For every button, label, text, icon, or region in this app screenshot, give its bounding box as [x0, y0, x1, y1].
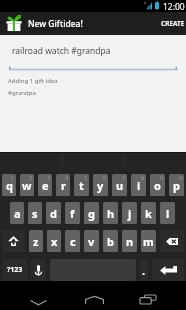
staticText: s [32, 206, 38, 221]
button[interactable]: v [84, 230, 99, 252]
staticText: 4 [65, 174, 69, 181]
staticText: w [22, 178, 32, 193]
staticText: #grandpa [8, 89, 36, 97]
staticText: r [61, 178, 66, 193]
button[interactable]: e [38, 174, 52, 196]
button[interactable]: Shift [2, 230, 25, 252]
button[interactable]: x [47, 230, 61, 252]
button[interactable]: Recent apps [128, 290, 168, 308]
button[interactable]: y [93, 174, 108, 196]
staticText: l [166, 206, 170, 221]
staticText: 5 [84, 174, 88, 181]
staticText: railroad watch #grandpa [12, 45, 111, 57]
button[interactable]: a [10, 202, 24, 224]
staticText: i [137, 178, 141, 193]
staticText: 6 [103, 174, 107, 181]
button[interactable]: f [65, 202, 80, 224]
button[interactable]: s [28, 202, 42, 224]
button[interactable]: Home [74, 291, 114, 309]
button[interactable]: o [150, 174, 165, 196]
staticText: j [128, 206, 132, 221]
button[interactable]: t [74, 174, 89, 196]
staticText: m [143, 234, 154, 249]
button[interactable]: q [2, 174, 16, 196]
staticText: d [50, 206, 57, 221]
staticText: New Giftidea! [28, 18, 83, 30]
staticText: 3 [47, 174, 51, 181]
button[interactable]: w [20, 174, 34, 196]
staticText: o [154, 178, 161, 193]
staticText: z [33, 234, 39, 249]
button[interactable]: g [84, 202, 99, 224]
button[interactable]: z [29, 230, 43, 252]
button[interactable]: j [122, 202, 137, 224]
staticText: 1 [11, 174, 15, 181]
button[interactable]: Voice input [31, 259, 46, 281]
button[interactable]: . [140, 259, 148, 281]
staticText: CREATE [161, 19, 185, 28]
staticText: a [14, 206, 21, 221]
staticText: q [6, 178, 13, 193]
button[interactable]: Back [18, 293, 58, 310]
button[interactable]: b [103, 230, 118, 252]
button[interactable]: l [160, 202, 175, 224]
staticText: t [79, 178, 84, 193]
staticText: p [173, 178, 180, 193]
staticText: c [70, 234, 76, 249]
staticText: n [126, 234, 134, 249]
button[interactable]: r [56, 174, 70, 196]
staticText: 0 [179, 174, 183, 181]
staticText: 12:00 [163, 1, 185, 13]
staticText: h [107, 206, 115, 221]
button[interactable]: n [122, 230, 137, 252]
staticText: u [116, 178, 124, 193]
button[interactable]: u [112, 174, 127, 196]
staticText: f [70, 206, 75, 221]
button[interactable]: Backspace [160, 230, 184, 252]
staticText: Adding 1 gift idea [8, 77, 58, 85]
staticText: ?123 [7, 265, 23, 275]
staticText: e [42, 178, 49, 193]
staticText: 8 [141, 174, 145, 181]
staticText: 2 [29, 174, 33, 181]
button[interactable]: CREATE [157, 12, 186, 35]
button[interactable]: d [46, 202, 61, 224]
staticText: x [51, 234, 58, 249]
staticText: 7 [122, 174, 126, 181]
button[interactable]: i [131, 174, 146, 196]
staticText: k [145, 206, 152, 221]
button[interactable]: Enter [152, 259, 184, 281]
button[interactable]: p [169, 174, 184, 196]
staticText: v [88, 234, 95, 249]
button[interactable]: m [141, 230, 156, 252]
staticText: b [107, 234, 114, 249]
staticText: g [88, 206, 95, 221]
staticText: . [142, 263, 146, 278]
button[interactable]: ?123 [2, 259, 27, 281]
button[interactable]: h [103, 202, 118, 224]
button[interactable]: k [141, 202, 156, 224]
staticText: 9 [160, 174, 164, 181]
button[interactable]: c [65, 230, 80, 252]
staticText: y [97, 178, 104, 193]
